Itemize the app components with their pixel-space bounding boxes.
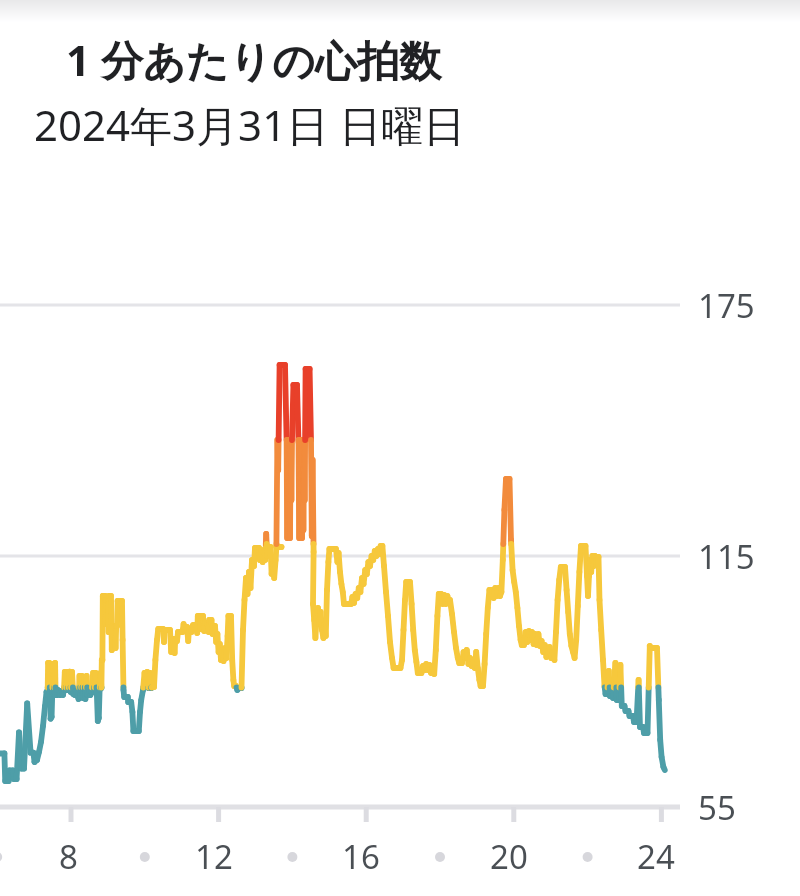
staticText: 24 (637, 834, 675, 879)
staticText: 16 (342, 834, 380, 879)
staticText: 20 (490, 834, 528, 879)
staticText: 8 (59, 834, 78, 879)
staticText: 1 分あたりの心拍数 (66, 31, 441, 88)
staticText: 175 (698, 283, 755, 328)
staticText: 12 (195, 834, 233, 879)
staticText: 55 (698, 785, 736, 830)
staticText: 115 (698, 534, 755, 579)
staticText: 2024年3月31日 日曜日 (34, 96, 466, 153)
